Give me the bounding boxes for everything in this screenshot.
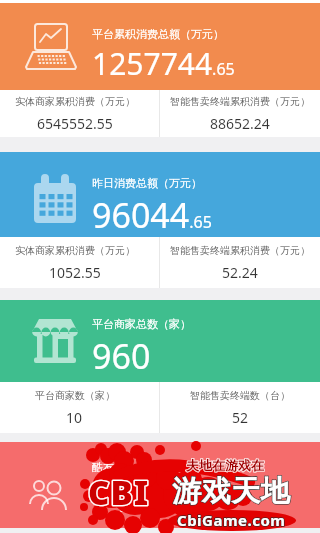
staticText: 昨日消费总额（万元） — [92, 176, 202, 190]
staticText: 52.24 — [222, 263, 258, 282]
button[interactable]: 平台商家数（家） — [0, 382, 149, 433]
staticText: 智能售卖终端数（台） — [190, 389, 290, 402]
button[interactable]: 智能售卖终端累积消费（万元） — [160, 237, 320, 288]
staticText: 平台商家总数（家） — [92, 317, 191, 331]
button[interactable]: 昨日消费总额（万元） — [0, 152, 320, 237]
button[interactable]: 实体商家累积消费（万元） — [0, 237, 149, 288]
staticText: 酷友总数（个） — [92, 460, 169, 474]
staticText: 智能售卖终端累积消费（万元） — [170, 95, 310, 108]
staticText: 52 — [232, 408, 249, 427]
button[interactable]: 智能售卖终端数（台） — [160, 382, 320, 433]
staticText: 游戏天地 — [172, 473, 290, 510]
staticText: 夫地在游戏在 — [186, 457, 264, 473]
staticText: 平台商家数（家） — [35, 389, 115, 402]
staticText: 夫地在游戏在 — [186, 457, 264, 473]
staticText: 智能售卖终端累积消费（万元） — [170, 244, 310, 257]
staticText: CBI — [88, 470, 150, 515]
staticText: 10 — [66, 408, 83, 427]
staticText: 实体商家累积消费（万元） — [15, 244, 135, 257]
staticText: CbiGame.com — [177, 510, 286, 530]
staticText: CBI — [88, 470, 150, 515]
staticText: 1257744.65 — [92, 43, 235, 84]
staticText: 960 — [92, 333, 151, 379]
button[interactable]: 实体商家累积消费（万元） — [0, 90, 149, 137]
button[interactable]: 智能售卖终端累积消费（万元） — [160, 90, 320, 137]
staticText: 实体商家累积消费（万元） — [15, 95, 135, 108]
staticText: 平台累积消费总额（万元） — [92, 27, 224, 41]
staticText: 6545552.55 — [37, 114, 113, 133]
button[interactable]: 平台商家总数（家） — [0, 300, 320, 382]
staticText: 88652.24 — [210, 114, 270, 133]
button[interactable]: 平台累积消费总额（万元） — [0, 3, 320, 90]
staticText: 游戏天地 — [172, 473, 290, 510]
staticText: 96044.65 — [92, 192, 212, 237]
staticText: 1052.55 — [49, 263, 101, 282]
button[interactable]: 酷友总数（个） — [0, 442, 320, 528]
staticText: 1126.65 — [92, 476, 193, 522]
staticText: CbiGame.com — [177, 510, 286, 530]
